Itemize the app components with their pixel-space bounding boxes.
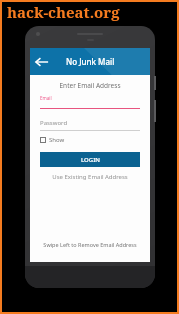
staticText: Email (40, 95, 52, 101)
button[interactable]: Show (40, 136, 65, 144)
staticText: Password (40, 119, 68, 127)
staticText: No Junk Mail (66, 56, 115, 67)
staticText: Swipe Left to Remove Email Address (30, 241, 150, 248)
button[interactable]: Back (33, 53, 51, 71)
staticText: Show (49, 136, 65, 144)
button[interactable]: LOGIN (40, 152, 140, 167)
staticText: Enter Email Address (40, 81, 140, 90)
staticText: LOGIN (81, 156, 100, 164)
staticText: hack-cheat.org (7, 2, 120, 22)
button[interactable]: Use Existing Email Address (40, 173, 140, 181)
